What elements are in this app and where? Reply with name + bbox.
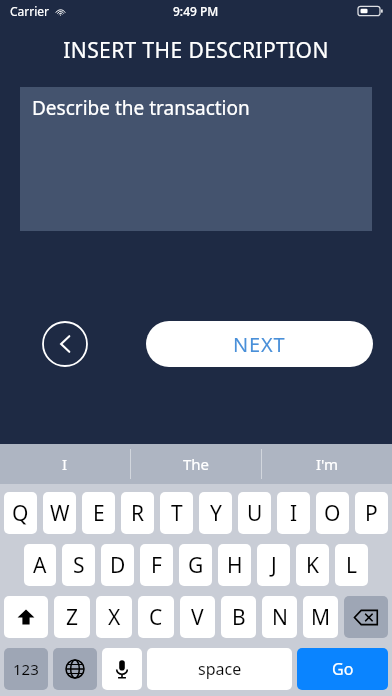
staticText: I — [290, 499, 298, 528]
staticText: W — [50, 499, 70, 528]
staticText: B — [232, 603, 246, 632]
button[interactable]: Z — [54, 596, 90, 638]
button[interactable]: X — [96, 596, 132, 638]
button[interactable]: Shift — [4, 596, 48, 638]
button[interactable]: Voice input — [102, 648, 142, 690]
staticText: S — [73, 551, 85, 580]
staticText: Carrier — [10, 3, 50, 19]
staticText: T — [171, 499, 183, 528]
button[interactable]: F — [140, 544, 173, 586]
button[interactable]: Backspace — [344, 596, 388, 638]
staticText: G — [188, 551, 204, 580]
staticText: space — [198, 658, 242, 680]
staticText: P — [365, 499, 378, 528]
button[interactable]: I'm — [262, 444, 392, 484]
staticText: 123 — [13, 659, 39, 679]
staticText: I — [62, 454, 68, 474]
staticText: U — [247, 499, 263, 528]
button[interactable]: N — [262, 596, 297, 638]
staticText: R — [131, 499, 145, 528]
button[interactable]: I — [277, 492, 310, 534]
button[interactable]: NEXT — [146, 321, 373, 367]
staticText: 9:49 PM — [173, 3, 219, 19]
button[interactable]: H — [218, 544, 251, 586]
button[interactable]: space — [147, 648, 292, 690]
staticText: NEXT — [233, 331, 286, 358]
button[interactable]: Describe the transaction — [20, 87, 372, 231]
staticText: J — [271, 551, 277, 580]
staticText: L — [346, 551, 358, 580]
staticText: D — [110, 551, 126, 580]
button[interactable]: A — [24, 544, 56, 586]
staticText: Go — [332, 658, 354, 680]
button[interactable]: G — [179, 544, 212, 586]
button[interactable]: Y — [199, 492, 232, 534]
button[interactable]: P — [355, 492, 388, 534]
button[interactable]: Go — [297, 648, 388, 690]
staticText: V — [191, 603, 204, 632]
button[interactable]: L — [335, 544, 368, 586]
staticText: E — [93, 499, 105, 528]
button[interactable]: S — [62, 544, 95, 586]
staticText: F — [151, 551, 162, 580]
staticText: X — [108, 603, 121, 632]
button[interactable]: 123 — [4, 648, 48, 690]
button[interactable]: O — [316, 492, 349, 534]
staticText: Y — [210, 499, 222, 528]
button[interactable]: J — [257, 544, 290, 586]
staticText: A — [33, 551, 47, 580]
staticText: I'm — [316, 454, 339, 474]
button[interactable]: V — [180, 596, 215, 638]
staticText: M — [311, 603, 331, 632]
staticText: Z — [66, 603, 79, 632]
staticText: Q — [12, 499, 29, 528]
button[interactable]: W — [43, 492, 76, 534]
button[interactable]: U — [238, 492, 271, 534]
staticText: Describe the transaction — [32, 95, 250, 121]
staticText: O — [324, 499, 341, 528]
button[interactable]: E — [82, 492, 115, 534]
staticText: N — [272, 603, 288, 632]
staticText: The — [183, 454, 210, 474]
button[interactable]: C — [138, 596, 174, 638]
staticText: H — [227, 551, 243, 580]
button[interactable]: I — [0, 444, 130, 484]
staticText: K — [306, 551, 319, 580]
staticText: C — [149, 603, 163, 632]
button[interactable]: R — [121, 492, 154, 534]
button[interactable]: The — [131, 444, 261, 484]
button[interactable]: Q — [4, 492, 37, 534]
staticText: INSERT THE DESCRIPTION — [0, 36, 392, 65]
button[interactable]: D — [101, 544, 134, 586]
button[interactable]: Change keyboard — [53, 648, 97, 690]
button[interactable]: B — [221, 596, 256, 638]
button[interactable]: Back — [42, 321, 88, 367]
button[interactable]: T — [160, 492, 193, 534]
button[interactable]: K — [296, 544, 329, 586]
button[interactable]: M — [303, 596, 338, 638]
